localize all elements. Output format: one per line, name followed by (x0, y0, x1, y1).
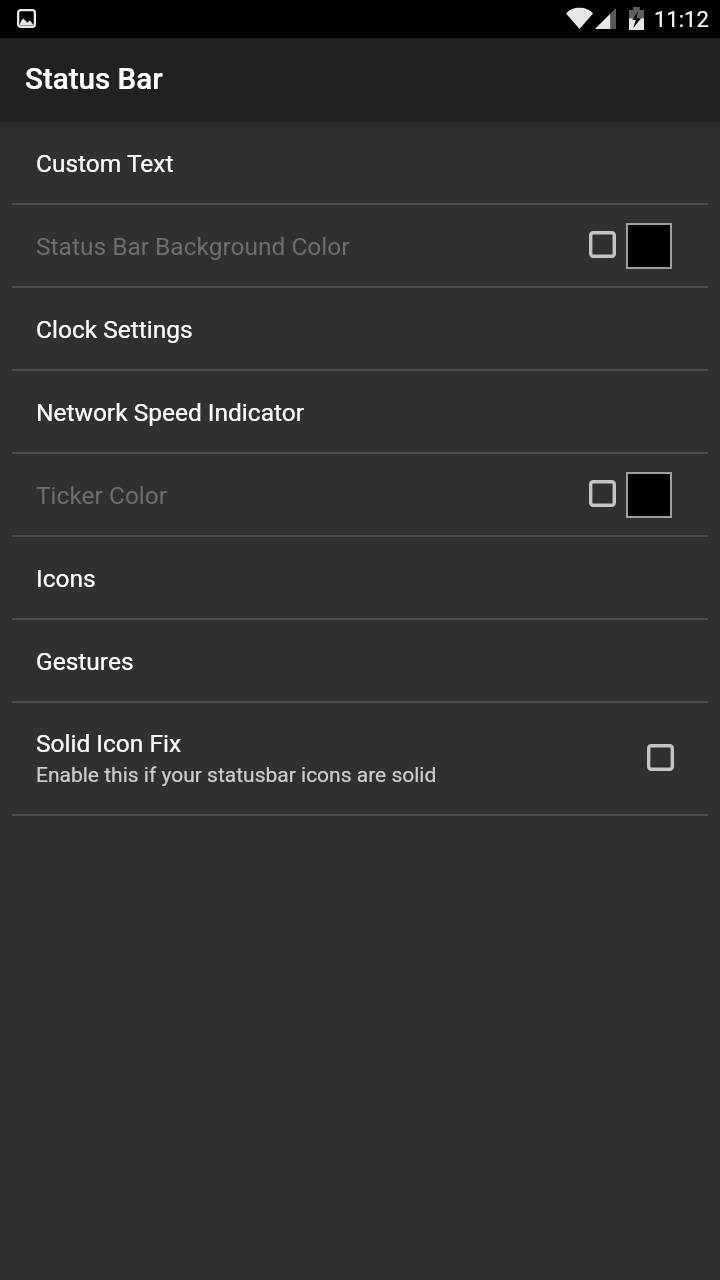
button[interactable]: Toggle Status Bar Background Color (578, 220, 626, 268)
staticText: Status Bar (25, 62, 163, 97)
staticText: 11:12 (654, 7, 709, 33)
button[interactable]: Solid Icon Fix (0, 703, 720, 814)
button[interactable]: Toggle Ticker Color (578, 469, 626, 517)
other: Screenshot notification (17, 9, 36, 28)
button[interactable]: Icons (0, 537, 720, 618)
button[interactable]: Gestures (0, 620, 720, 701)
button[interactable]: Network Speed Indicator (0, 371, 720, 452)
button[interactable]: Ticker Color (0, 454, 720, 535)
button[interactable]: Clock Settings (0, 288, 720, 369)
staticText: Network Speed Indicator (36, 398, 305, 427)
staticText: Icons (36, 564, 96, 593)
staticText: Solid Icon Fix (36, 729, 182, 758)
staticText: Enable this if your statusbar icons are … (36, 763, 437, 788)
button[interactable]: Toggle Solid Icon Fix (636, 733, 684, 781)
staticText: Status Bar Background Color (36, 232, 350, 261)
staticText: Clock Settings (36, 315, 193, 344)
staticText: Custom Text (36, 149, 174, 178)
staticText: Gestures (36, 647, 134, 676)
button[interactable]: Status Bar Background Color (0, 205, 720, 286)
button[interactable]: Custom Text (0, 122, 720, 203)
staticText: Ticker Color (36, 481, 168, 510)
